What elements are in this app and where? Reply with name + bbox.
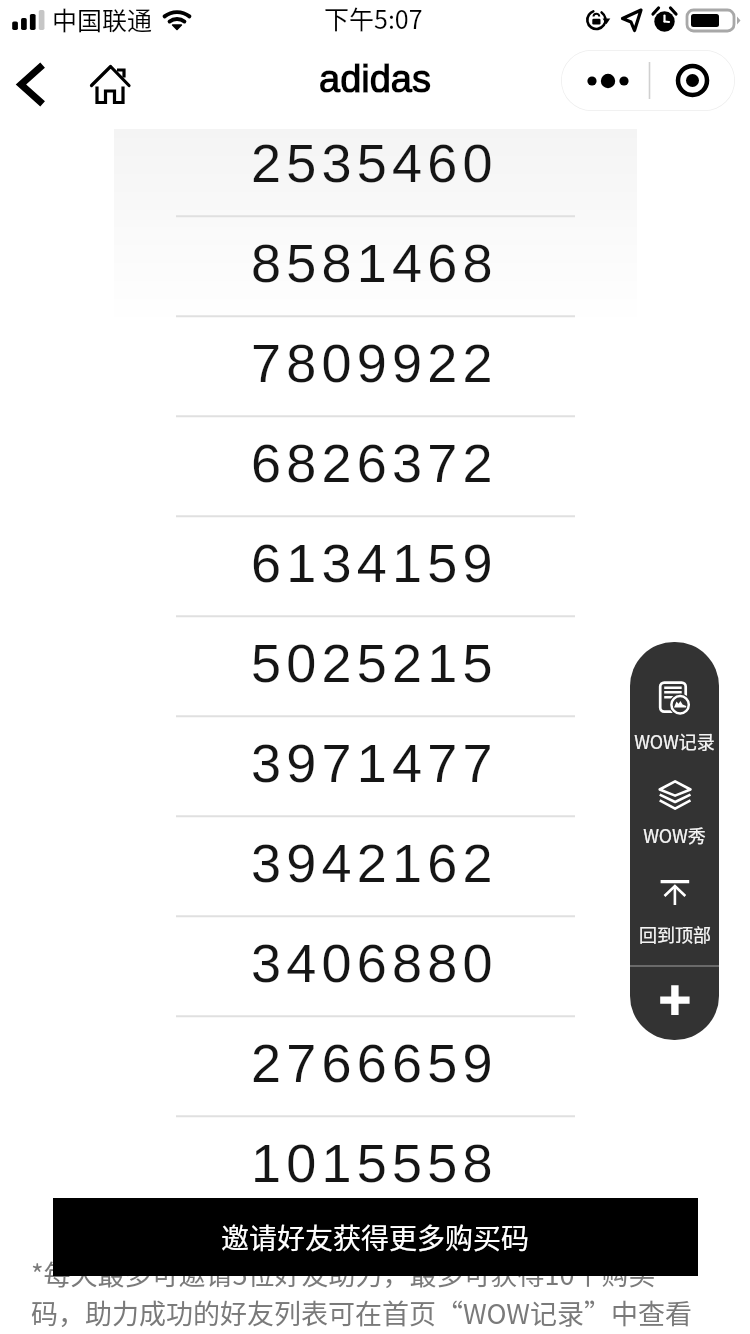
button[interactable]: Back (0, 56, 58, 112)
staticText: 8581468 (251, 233, 498, 293)
staticText: 3406880 (251, 933, 498, 993)
button[interactable]: 3942162 (0, 817, 750, 917)
staticText: 3942162 (251, 833, 498, 893)
staticText: 7809922 (251, 333, 498, 393)
button[interactable]: 8581468 (0, 217, 750, 317)
button[interactable]: 邀请好友获得更多购买码 (53, 1198, 698, 1276)
staticText: WOW记录 (634, 728, 715, 754)
button[interactable]: 6134159 (0, 517, 750, 617)
button[interactable]: Close (650, 50, 735, 111)
staticText: 6826372 (251, 433, 498, 493)
button[interactable]: 1015558 (0, 1117, 750, 1217)
staticText: 中国联通 (52, 1, 153, 37)
button[interactable]: WOW记录 (630, 656, 719, 754)
staticText: 1015558 (251, 1133, 498, 1193)
staticText: WOW秀 (643, 822, 706, 848)
staticText: 回到顶部 (639, 921, 711, 947)
button[interactable]: 7809922 (0, 317, 750, 417)
button[interactable]: 2766659 (0, 1017, 750, 1117)
button[interactable]: 3971477 (0, 717, 750, 817)
button[interactable]: 回到顶部 (630, 848, 719, 944)
staticText: adidas (319, 58, 431, 100)
button[interactable]: More (561, 50, 649, 111)
button[interactable]: 6826372 (0, 417, 750, 517)
staticText: 下午5:07 (324, 0, 423, 36)
button[interactable]: 2535460 (0, 117, 750, 217)
button[interactable]: Add (630, 967, 719, 1040)
staticText: *每天最多可邀请5位好友助力，最多可获得10个购买码，助力成功的好友列表可在首页… (31, 1254, 703, 1332)
button[interactable]: WOW秀 (630, 752, 719, 848)
staticText: 2535460 (251, 133, 498, 193)
staticText: 5025215 (251, 633, 498, 693)
staticText: 邀请好友获得更多购买码 (221, 1217, 530, 1258)
staticText: 2766659 (251, 1033, 498, 1093)
staticText: 3971477 (251, 733, 498, 793)
staticText: 6134159 (251, 533, 498, 593)
button[interactable]: 3406880 (0, 917, 750, 1017)
button[interactable]: Home (82, 56, 138, 112)
button[interactable]: 5025215 (0, 617, 750, 717)
